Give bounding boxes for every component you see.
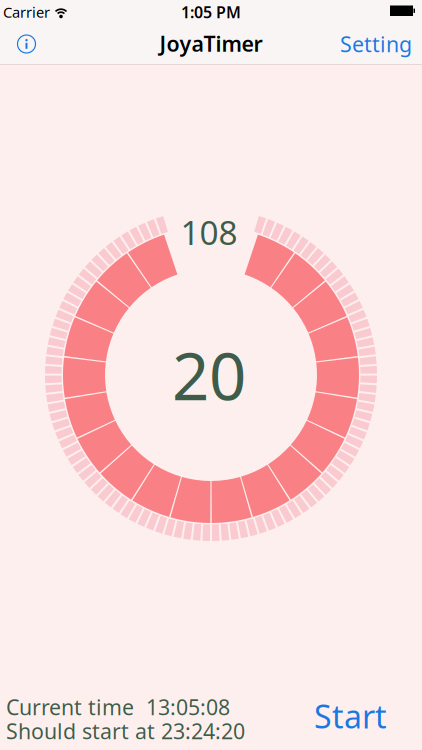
staticText: JoyaTimer [159,29,262,58]
staticText: 20 [172,332,246,418]
staticText: 108 [180,210,237,254]
staticText: Start [314,695,387,737]
button[interactable]: Start [314,695,387,737]
staticText: Carrier [3,2,50,22]
staticText: Setting [340,30,412,58]
staticText: Should start at 23:24:20 [6,717,245,745]
staticText: Current time [6,693,134,721]
staticText: 1:05 PM [181,1,241,23]
button[interactable]: Info [15,33,37,55]
button[interactable]: Setting [340,30,412,58]
staticText: 13:05:08 [146,693,230,721]
